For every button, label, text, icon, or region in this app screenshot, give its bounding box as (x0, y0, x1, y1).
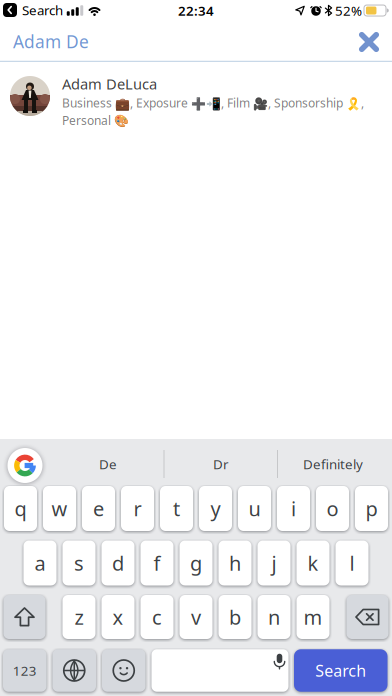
button[interactable]: k (296, 540, 329, 585)
button[interactable]: n (257, 595, 290, 639)
button[interactable]: Google (7, 448, 42, 483)
staticText: t (173, 495, 180, 522)
staticText: w (51, 495, 67, 522)
staticText: e (93, 495, 104, 522)
button[interactable]: i (277, 486, 310, 531)
staticText: r (133, 495, 141, 522)
button[interactable]: p (355, 486, 388, 531)
staticText: j (271, 550, 276, 576)
staticText: Search (315, 660, 366, 681)
button[interactable]: Back to Search (3, 1, 63, 19)
staticText: b (229, 604, 241, 630)
staticText: z (74, 604, 83, 630)
button[interactable]: x (101, 595, 134, 639)
staticText: Business 💼, Exposure ➕📲, Film 🎥, Sponsor… (62, 95, 364, 111)
button[interactable]: r (121, 486, 154, 531)
button[interactable]: u (238, 486, 271, 531)
staticText: g (190, 550, 202, 576)
staticText: k (307, 550, 318, 576)
button[interactable]: Shift (3, 595, 45, 639)
staticText: De (99, 455, 117, 473)
button[interactable]: t (160, 486, 193, 531)
staticText: d (112, 550, 124, 576)
button[interactable]: Search (294, 649, 387, 692)
button[interactable]: Dr (171, 449, 271, 479)
button[interactable]: h (218, 540, 251, 585)
button[interactable]: o (316, 486, 349, 531)
staticText: y (210, 495, 220, 522)
button[interactable]: v (179, 595, 212, 639)
staticText: q (14, 495, 26, 522)
staticText: p (365, 495, 377, 522)
staticText: 22:34 (178, 2, 214, 19)
button[interactable]: Delete (346, 595, 388, 639)
button[interactable]: z (62, 595, 95, 639)
staticText: f (153, 550, 160, 576)
button[interactable]: Close (359, 32, 379, 52)
button[interactable]: b (218, 595, 251, 639)
staticText: Search (22, 1, 63, 19)
staticText: 52% (335, 2, 362, 19)
staticText: c (152, 604, 162, 630)
button[interactable]: Adam DeLuca (0, 62, 392, 135)
staticText: u (248, 495, 260, 522)
staticText: i (291, 495, 296, 522)
button[interactable]: m (296, 595, 329, 639)
staticText: Adam DeLuca (62, 74, 157, 93)
staticText: x (112, 604, 123, 630)
button[interactable]: w (43, 486, 76, 531)
staticText: h (229, 550, 241, 576)
staticText: Definitely (303, 455, 363, 473)
staticText: v (191, 604, 201, 630)
button[interactable]: c (140, 595, 173, 639)
staticText: m (303, 604, 322, 630)
button[interactable]: s (62, 540, 95, 585)
button[interactable]: l (335, 540, 368, 585)
button[interactable]: a (23, 540, 56, 585)
button[interactable]: f (140, 540, 173, 585)
button[interactable]: g (179, 540, 212, 585)
button[interactable]: Emoji (102, 649, 145, 692)
button[interactable]: Definitely (278, 449, 388, 479)
staticText: l (349, 550, 354, 576)
staticText: Personal 🎨 (62, 112, 129, 128)
button[interactable]: q (4, 486, 37, 531)
staticText: o (326, 495, 338, 522)
staticText: s (74, 550, 84, 576)
staticText: a (34, 550, 45, 576)
staticText: Adam De (13, 30, 89, 53)
button[interactable]: e (82, 486, 115, 531)
staticText: 123 (13, 662, 37, 679)
button[interactable]: Space (151, 649, 288, 692)
button[interactable]: Next keyboard (52, 649, 96, 692)
button[interactable]: j (257, 540, 290, 585)
button[interactable]: y (199, 486, 232, 531)
button[interactable]: d (101, 540, 134, 585)
staticText: n (268, 604, 280, 630)
staticText: Dr (213, 455, 229, 473)
button[interactable]: De (58, 449, 158, 479)
button[interactable]: 123 (3, 649, 46, 692)
